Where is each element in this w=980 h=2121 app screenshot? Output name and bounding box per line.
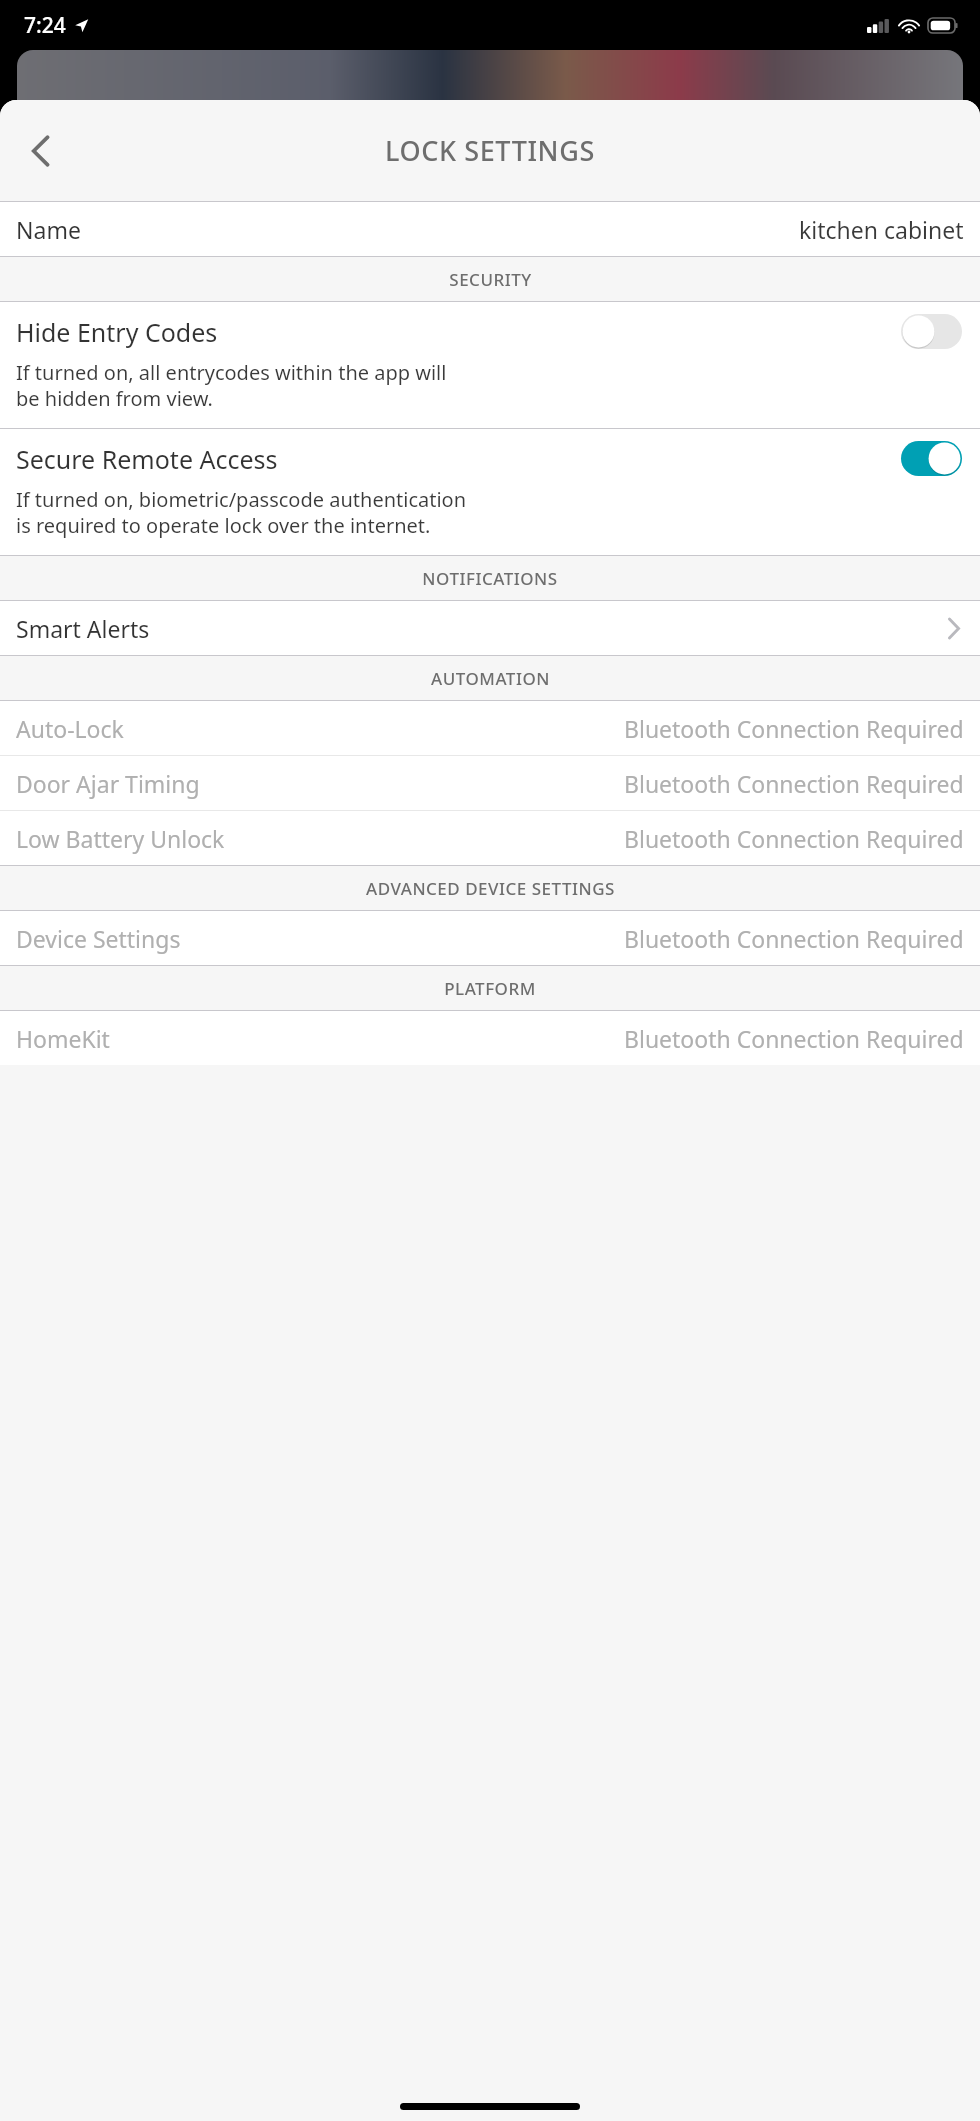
staticText: ADVANCED DEVICE SETTINGS bbox=[366, 877, 615, 900]
staticText: Device Settings bbox=[16, 923, 181, 954]
button[interactable]: Auto-Lock bbox=[0, 701, 980, 755]
button[interactable]: Name bbox=[0, 202, 980, 256]
staticText: kitchen cabinet bbox=[799, 214, 964, 245]
staticText: PLATFORM bbox=[444, 977, 536, 1000]
staticText: Bluetooth Connection Required bbox=[624, 713, 964, 744]
staticText: HomeKit bbox=[16, 1023, 110, 1054]
staticText: Bluetooth Connection Required bbox=[624, 1023, 964, 1054]
staticText: 7:24 bbox=[24, 11, 66, 40]
staticText: If turned on, all entrycodes within the … bbox=[16, 359, 447, 412]
staticText: Secure Remote Access bbox=[16, 442, 278, 476]
staticText: Name bbox=[16, 214, 81, 245]
staticText: LOCK SETTINGS bbox=[385, 132, 595, 169]
staticText: Hide Entry Codes bbox=[16, 315, 218, 349]
button[interactable]: Low Battery Unlock bbox=[0, 811, 980, 865]
button[interactable]: Secure Remote Access bbox=[0, 429, 980, 555]
staticText: NOTIFICATIONS bbox=[422, 567, 558, 590]
staticText: AUTOMATION bbox=[431, 667, 550, 690]
button[interactable]: Door Ajar Timing bbox=[0, 756, 980, 810]
button[interactable]: Device Settings bbox=[0, 911, 980, 965]
staticText: SECURITY bbox=[449, 268, 532, 291]
button[interactable]: Off bbox=[901, 314, 962, 349]
staticText: Bluetooth Connection Required bbox=[624, 768, 964, 799]
staticText: Smart Alerts bbox=[16, 613, 150, 644]
staticText: Bluetooth Connection Required bbox=[624, 823, 964, 854]
staticText: Low Battery Unlock bbox=[16, 823, 225, 854]
staticText: If turned on, biometric/passcode authent… bbox=[16, 486, 467, 539]
button[interactable]: Hide Entry Codes bbox=[0, 302, 980, 428]
button[interactable]: On bbox=[901, 441, 962, 476]
staticText: Bluetooth Connection Required bbox=[624, 923, 964, 954]
staticText: Door Ajar Timing bbox=[16, 768, 200, 799]
button[interactable]: Back bbox=[10, 121, 70, 181]
staticText: Auto-Lock bbox=[16, 713, 124, 744]
button[interactable]: Smart Alerts bbox=[0, 601, 980, 655]
button[interactable]: HomeKit bbox=[0, 1011, 980, 1065]
